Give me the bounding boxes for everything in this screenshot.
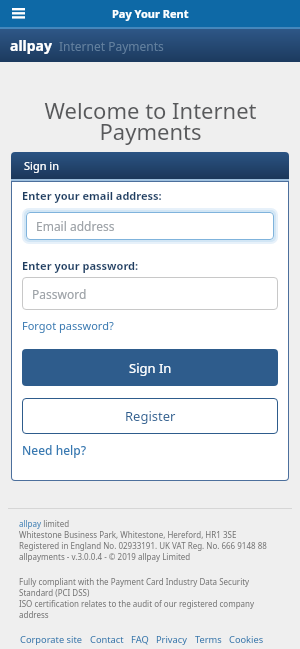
button[interactable]: Contact: [90, 633, 124, 646]
button[interactable]: FAQ: [131, 633, 149, 646]
staticText: Register: [125, 407, 176, 425]
button[interactable]: Need help?: [22, 442, 87, 458]
staticText: Enter your email address:: [22, 188, 162, 203]
button[interactable]: Forgot password?: [22, 318, 114, 333]
staticText: Password: [32, 286, 87, 302]
staticText: Sign in: [24, 158, 59, 173]
staticText: allpayments - v.3.0.0.4 - © 2019 allpay …: [19, 551, 191, 562]
staticText: Email address: [36, 218, 115, 234]
staticText: allpay: [10, 36, 52, 55]
staticText: Whitestone Business Park, Whitestone, He…: [19, 529, 237, 540]
button[interactable]: Sign In: [22, 349, 278, 386]
button[interactable]: Cookies: [229, 633, 264, 646]
staticText: Fully compliant with the Payment Card In…: [19, 576, 250, 598]
button[interactable]: Terms: [195, 633, 222, 646]
staticText: Welcome to Internet Payments: [44, 95, 257, 147]
staticText: ISO certification relates to the audit o…: [19, 598, 255, 620]
staticText: Enter your password:: [22, 258, 139, 273]
button[interactable]: Corporate site: [20, 633, 83, 646]
button[interactable]: Email address: [26, 212, 274, 240]
staticText: allpay limited: [19, 518, 70, 529]
button[interactable]: Privacy: [156, 633, 188, 646]
button[interactable]: Register: [22, 398, 278, 434]
button[interactable]: Password: [22, 277, 278, 310]
button[interactable]: [0, 0, 36, 27]
staticText: Sign In: [129, 359, 172, 377]
staticText: Registered in England No. 02933191. UK V…: [19, 540, 267, 551]
staticText: Internet Payments: [59, 38, 164, 54]
staticText: Pay Your Rent: [112, 6, 189, 21]
